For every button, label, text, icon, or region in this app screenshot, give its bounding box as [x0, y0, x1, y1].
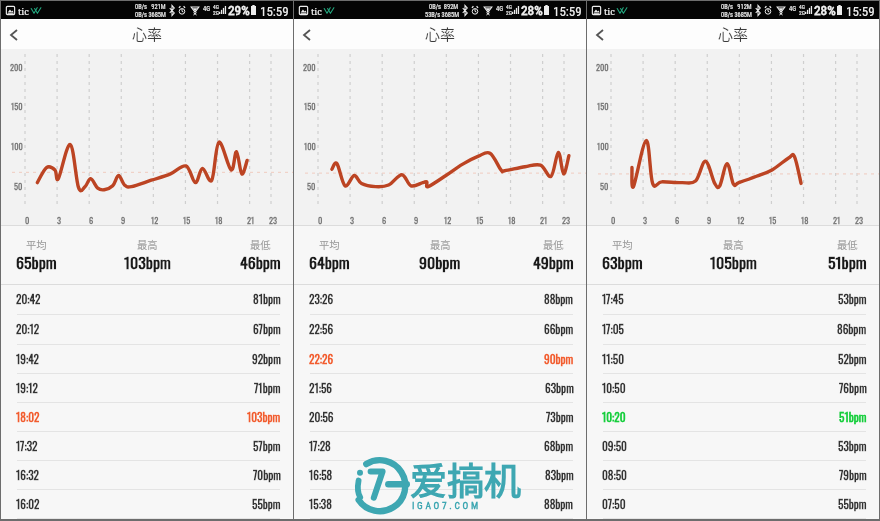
staticText: 9: [414, 214, 419, 225]
button[interactable]: 17:05: [587, 315, 879, 345]
staticText: 最低: [837, 237, 858, 252]
staticText: 100: [11, 140, 23, 151]
staticText: tic: [311, 5, 322, 18]
staticText: 200: [10, 61, 23, 72]
button[interactable]: 19:12: [1, 374, 293, 403]
staticText: 28%: [814, 3, 836, 19]
staticText: 73bpm: [546, 409, 574, 426]
staticText: 29%: [228, 3, 250, 19]
button[interactable]: 15:38: [294, 490, 586, 519]
staticText: 50: [14, 180, 23, 191]
staticText: 16:02: [16, 496, 40, 513]
staticText: 150: [304, 100, 316, 111]
button[interactable]: 20:12: [1, 315, 293, 345]
staticText: IGAO7.COM: [412, 500, 527, 511]
button[interactable]: 20:56: [294, 403, 586, 432]
staticText: 63bpm: [602, 250, 643, 274]
button[interactable]: 17:32: [1, 432, 293, 461]
staticText: 51bpm: [839, 409, 867, 426]
staticText: 15: [183, 214, 191, 225]
staticText: 19:42: [16, 351, 40, 368]
staticText: 17:32: [16, 438, 38, 455]
staticText: 最低: [543, 237, 564, 252]
staticText: 4G: [213, 4, 219, 10]
staticText: 50: [600, 180, 609, 191]
staticText: 23:26: [309, 291, 334, 308]
button[interactable]: 22:56: [294, 315, 586, 345]
staticText: 16:32: [16, 467, 39, 484]
staticText: 2G: [213, 10, 219, 16]
staticText: 4G: [496, 5, 504, 13]
button[interactable]: Back: [4, 25, 23, 44]
staticText: 200: [596, 61, 609, 72]
staticText: 86bpm: [837, 321, 867, 338]
staticText: 0B/s 3685M: [135, 11, 166, 19]
button[interactable]: 07:50: [587, 490, 879, 519]
staticText: 55bpm: [252, 496, 281, 513]
staticText: 0: [25, 214, 30, 225]
staticText: 心率: [132, 23, 163, 45]
staticText: 11:50: [602, 351, 624, 368]
button[interactable]: 09:50: [587, 432, 879, 461]
button[interactable]: 22:26: [294, 345, 586, 374]
button[interactable]: 08:50: [587, 461, 879, 490]
staticText: 20:56: [309, 409, 334, 426]
staticText: 0B/s 912M: [721, 3, 752, 11]
staticText: 81bpm: [253, 291, 281, 308]
staticText: 21: [247, 214, 255, 225]
staticText: 90bpm: [544, 351, 574, 368]
button[interactable]: Back: [297, 25, 316, 44]
staticText: 67bpm: [253, 321, 281, 338]
staticText: 17:45: [602, 291, 624, 308]
staticText: 15:59: [846, 4, 875, 19]
staticText: 23: [855, 214, 864, 225]
staticText: 50: [307, 180, 316, 191]
staticText: 100: [304, 140, 316, 151]
staticText: 65bpm: [16, 250, 57, 274]
button[interactable]: 16:32: [1, 461, 293, 490]
staticText: 103bpm: [247, 409, 281, 426]
staticText: 21: [833, 214, 841, 225]
staticText: 3: [350, 214, 355, 225]
staticText: 0: [611, 214, 616, 225]
staticText: 0: [318, 214, 323, 225]
staticText: 19:12: [16, 380, 38, 397]
staticText: 23: [562, 214, 571, 225]
staticText: 51bpm: [828, 250, 867, 274]
button[interactable]: 11:50: [587, 345, 879, 374]
staticText: 最高: [137, 237, 158, 252]
button[interactable]: 17:28: [294, 432, 586, 461]
staticText: 2G: [799, 10, 805, 16]
button[interactable]: 18:02: [1, 403, 293, 432]
staticText: 平均: [319, 237, 340, 252]
staticText: 52bpm: [838, 351, 867, 368]
staticText: 18: [801, 214, 809, 225]
button[interactable]: 10:20: [587, 403, 879, 432]
staticText: 23: [269, 214, 278, 225]
button[interactable]: Back: [590, 25, 609, 44]
staticText: 08:50: [602, 467, 627, 484]
staticText: 22:56: [309, 321, 334, 338]
staticText: 66bpm: [544, 321, 574, 338]
staticText: 12: [151, 214, 159, 225]
staticText: 105bpm: [710, 250, 757, 274]
button[interactable]: 20:42: [1, 285, 293, 315]
button[interactable]: 10:50: [587, 374, 879, 403]
staticText: 10:50: [602, 380, 626, 397]
staticText: 64bpm: [309, 250, 350, 274]
button[interactable]: 21:56: [294, 374, 586, 403]
staticText: 6: [675, 214, 680, 225]
staticText: 22:26: [309, 351, 334, 368]
button[interactable]: 17:45: [587, 285, 879, 315]
button[interactable]: 16:02: [1, 490, 293, 519]
staticText: 150: [597, 100, 609, 111]
staticText: 20:12: [16, 321, 40, 338]
button[interactable]: 23:26: [294, 285, 586, 315]
staticText: 70bpm: [253, 467, 281, 484]
staticText: tic: [18, 5, 29, 18]
button[interactable]: 16:58: [294, 461, 586, 490]
staticText: 150: [11, 100, 23, 111]
staticText: 平均: [26, 237, 47, 252]
staticText: 6: [382, 214, 387, 225]
button[interactable]: 19:42: [1, 345, 293, 374]
